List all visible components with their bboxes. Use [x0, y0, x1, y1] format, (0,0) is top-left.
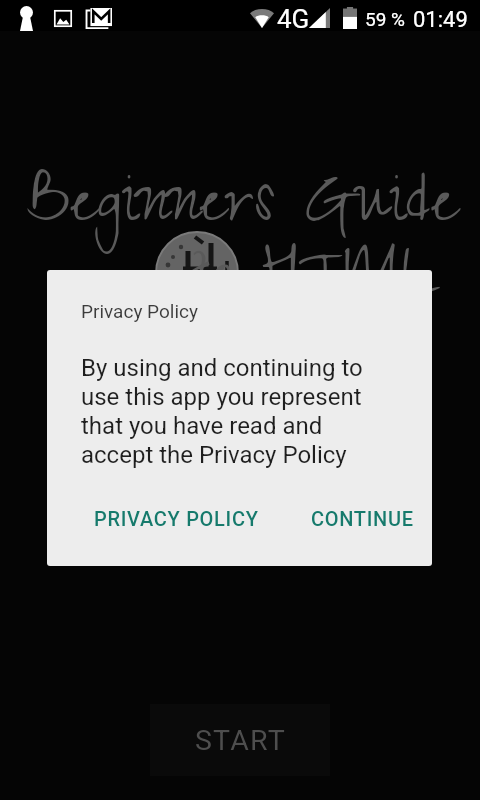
other: Secure lock: [20, 6, 33, 31]
staticText: START: [195, 724, 286, 757]
staticText: 59 %: [365, 8, 405, 30]
staticText: Privacy Policy: [81, 300, 198, 322]
other: Battery 59 percent: [343, 7, 357, 29]
other: Mail: [86, 8, 112, 29]
staticText: 4G: [277, 4, 310, 34]
staticText: 01:49: [413, 7, 468, 33]
staticText: to HTML: [188, 222, 441, 345]
staticText: PRIVACY POLICY: [94, 507, 259, 530]
other: Wi-Fi: [250, 9, 274, 28]
other: Mobile signal: [309, 8, 330, 28]
staticText: Beginners Guide: [26, 149, 458, 272]
button[interactable]: START: [150, 704, 330, 776]
staticText: CONTINUE: [311, 507, 414, 530]
other: Screenshot: [54, 10, 72, 27]
button[interactable]: CONTINUE: [299, 501, 426, 536]
staticText: By using and continuing to use this app …: [81, 354, 381, 468]
button[interactable]: PRIVACY POLICY: [82, 501, 271, 536]
